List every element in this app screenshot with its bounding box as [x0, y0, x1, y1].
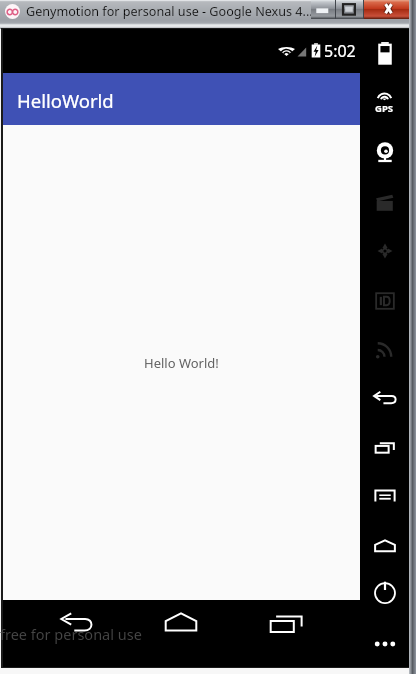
staticText: Genymotion for personal use - Google Nex…	[26, 3, 313, 20]
button[interactable]: Home	[151, 600, 211, 644]
button[interactable]: Battery	[360, 31, 409, 75]
button[interactable]: Identifiers	[360, 279, 409, 323]
button[interactable]: More	[360, 622, 409, 666]
staticText: HelloWorld	[17, 88, 114, 113]
staticText: free for personal use	[0, 624, 142, 644]
button[interactable]: Screen record	[360, 181, 409, 225]
button[interactable]: HelloWorld	[3, 73, 360, 125]
button[interactable]: Menu	[360, 474, 409, 518]
button[interactable]: Back	[360, 376, 409, 420]
button[interactable]: Home	[360, 524, 409, 568]
button[interactable]: Back	[47, 601, 107, 645]
button[interactable]: Rotate	[360, 229, 409, 273]
button[interactable]: Close	[364, 0, 413, 19]
button[interactable]: Recents	[257, 602, 317, 646]
button[interactable]: Network	[360, 327, 409, 371]
button[interactable]: Camera	[360, 131, 409, 175]
button[interactable]: Power	[360, 568, 409, 612]
button[interactable]: GPS	[360, 92, 409, 136]
staticText: GPS	[375, 102, 394, 115]
button[interactable]: Recents	[360, 426, 409, 470]
button[interactable]	[336, 0, 363, 19]
staticText: Hello World!	[144, 354, 219, 372]
staticText: 5:02	[324, 40, 356, 62]
button[interactable]	[311, 0, 335, 19]
